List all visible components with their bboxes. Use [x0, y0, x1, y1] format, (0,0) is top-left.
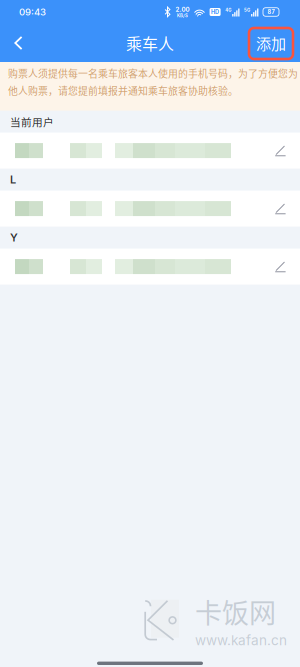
staticText: HD: [211, 9, 219, 15]
staticText: 购票人须提供每一名乘车旅客本人使用的手机号码，为了方便您为: [8, 66, 298, 80]
staticText: 添加: [256, 32, 286, 54]
button[interactable]: [0, 249, 300, 285]
staticText: 09:43: [19, 6, 46, 18]
staticText: 87: [267, 9, 274, 15]
staticText: 2.00: [175, 6, 189, 13]
button[interactable]: Back: [0, 25, 37, 61]
staticText: KB/S: [177, 13, 188, 18]
button[interactable]: 添加: [245, 22, 300, 64]
staticText: 当前用户: [10, 114, 54, 129]
staticText: 乘车人: [126, 31, 174, 55]
button[interactable]: [0, 133, 300, 169]
staticText: 5G: [244, 7, 250, 13]
staticText: Y: [10, 231, 18, 244]
staticText: 他人购票，请您提前填报并通知乘车旅客协助核验。: [8, 83, 238, 98]
staticText: L: [10, 173, 16, 186]
button[interactable]: [0, 191, 300, 227]
staticText: www.kafan.cn: [195, 632, 287, 649]
staticText: 卡饭网: [195, 592, 276, 631]
staticText: 4G: [225, 7, 231, 13]
